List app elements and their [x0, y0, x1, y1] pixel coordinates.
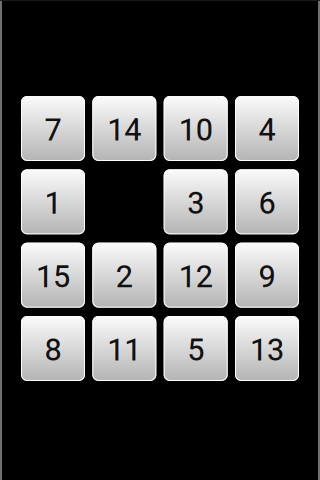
button[interactable]: 13 — [235, 316, 299, 381]
button[interactable]: 11 — [92, 316, 156, 381]
staticText: 13 — [250, 332, 284, 368]
staticText: 8 — [44, 332, 61, 368]
button[interactable]: 7 — [21, 96, 85, 161]
staticText: 10 — [179, 112, 213, 148]
button[interactable]: 4 — [235, 96, 299, 161]
staticText: 12 — [179, 259, 213, 295]
staticText: 1 — [44, 185, 61, 221]
staticText: 14 — [107, 112, 141, 148]
button[interactable]: 15 — [21, 243, 85, 308]
staticText: 5 — [187, 332, 204, 368]
button[interactable]: 12 — [164, 243, 228, 308]
button[interactable]: 6 — [235, 169, 299, 234]
staticText: 6 — [258, 185, 275, 221]
button[interactable]: 10 — [164, 96, 228, 161]
staticText: 7 — [44, 112, 61, 148]
button[interactable]: 9 — [235, 243, 299, 308]
button[interactable]: 1 — [21, 169, 85, 234]
button[interactable]: 5 — [164, 316, 228, 381]
staticText: 3 — [187, 185, 204, 221]
staticText: 11 — [107, 332, 141, 368]
button[interactable]: 8 — [21, 316, 85, 381]
button[interactable]: 3 — [164, 169, 228, 234]
button[interactable]: 14 — [92, 96, 156, 161]
staticText: 9 — [258, 259, 275, 295]
staticText: 15 — [36, 259, 70, 295]
button[interactable]: 2 — [92, 243, 156, 308]
staticText: 2 — [116, 259, 133, 295]
staticText: 4 — [258, 112, 275, 148]
